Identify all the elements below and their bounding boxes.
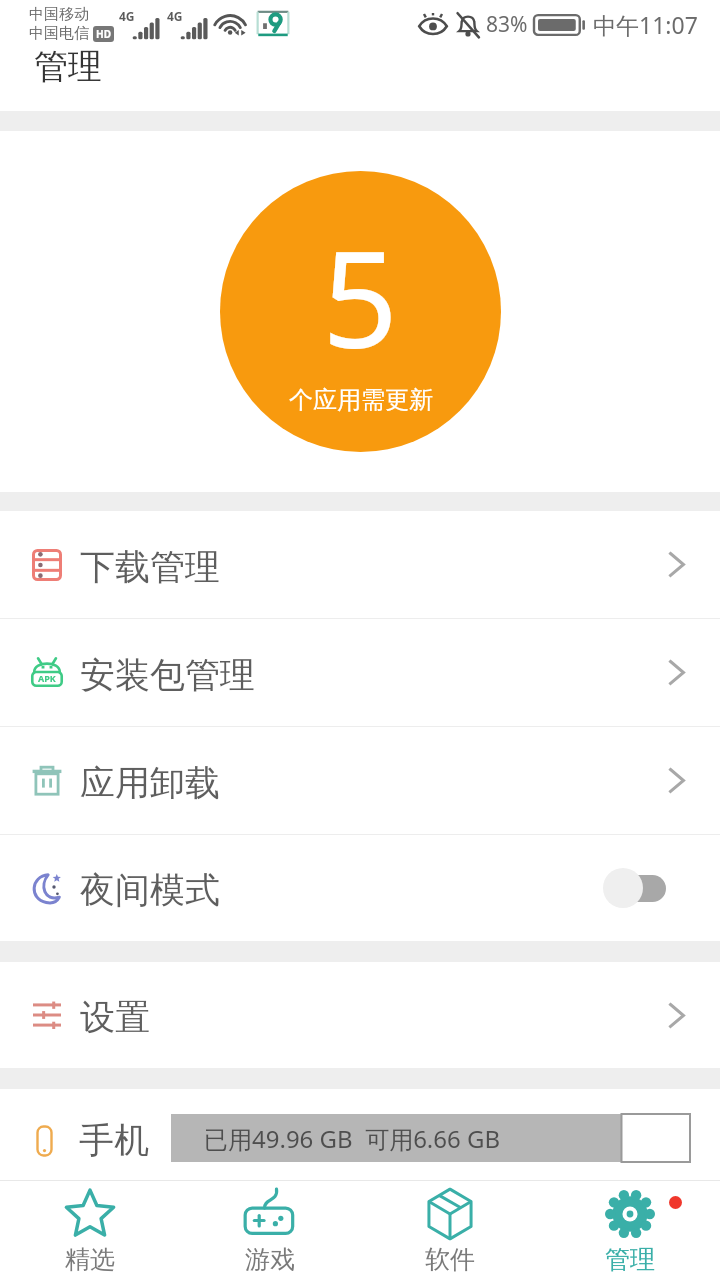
button[interactable]: 游戏 [180, 1181, 360, 1280]
staticText: 管理 [605, 1244, 655, 1275]
staticText: 安装包管理 [80, 653, 255, 697]
staticText: 中午11:07 [593, 9, 698, 40]
button[interactable]: 5 [220, 171, 501, 452]
button[interactable]: APK [0, 619, 720, 726]
button[interactable]: 软件 [360, 1181, 540, 1280]
staticText: 中国电信 [29, 24, 89, 43]
staticText: 应用卸载 [80, 761, 220, 805]
staticText: 5 [322, 206, 399, 387]
other: 应用卸载 [669, 768, 685, 793]
staticText: 下载管理 [80, 545, 220, 589]
staticText: 已用49.96 GB 可用6.66 GB [204, 1122, 501, 1155]
staticText: 4G [167, 8, 183, 24]
other: 设置 [669, 1003, 685, 1028]
staticText: 管理 [34, 45, 102, 88]
button[interactable]: 夜间模式 [0, 835, 720, 941]
button[interactable]: 管理 [540, 1181, 720, 1280]
staticText: 游戏 [245, 1244, 295, 1275]
staticText: 83% [486, 10, 528, 39]
button[interactable]: 设置 [0, 962, 720, 1068]
button[interactable]: 手机 [0, 1089, 720, 1179]
staticText: APK [38, 672, 56, 684]
staticText: 设置 [80, 995, 150, 1039]
staticText: 精选 [65, 1244, 115, 1275]
button[interactable]: 精选 [0, 1181, 180, 1280]
staticText: 中国移动 [29, 5, 89, 24]
staticText: 夜间模式 [80, 868, 220, 912]
other: 安装包管理 [669, 660, 685, 685]
staticText: HD [96, 27, 111, 41]
other: 下载管理 [669, 552, 685, 577]
button[interactable]: 应用卸载 [0, 727, 720, 834]
button[interactable]: 下载管理 [0, 511, 720, 618]
button[interactable]: 夜间模式开关 [608, 868, 666, 908]
staticText: 个应用需更新 [289, 385, 433, 415]
staticText: 4G [119, 8, 135, 24]
staticText: 手机 [79, 1118, 149, 1162]
staticText: 软件 [425, 1244, 475, 1275]
